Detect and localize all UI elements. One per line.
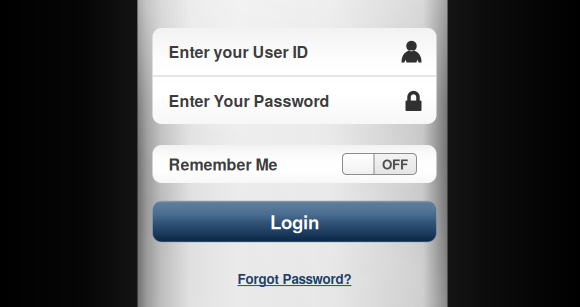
- button[interactable]: Forgot Password?: [237, 269, 351, 288]
- staticText: Remember Me: [168, 152, 277, 175]
- staticText: Enter your User ID: [168, 40, 308, 63]
- button[interactable]: Login: [152, 201, 436, 242]
- button[interactable]: Enter your User ID: [152, 27, 436, 75]
- staticText: Login: [270, 208, 319, 235]
- button[interactable]: Enter Your Password: [152, 76, 436, 124]
- button[interactable]: Remember Me: [152, 145, 436, 183]
- staticText: OFF: [382, 154, 408, 174]
- staticText: Enter Your Password: [168, 89, 329, 112]
- staticText: Forgot Password?: [237, 269, 351, 288]
